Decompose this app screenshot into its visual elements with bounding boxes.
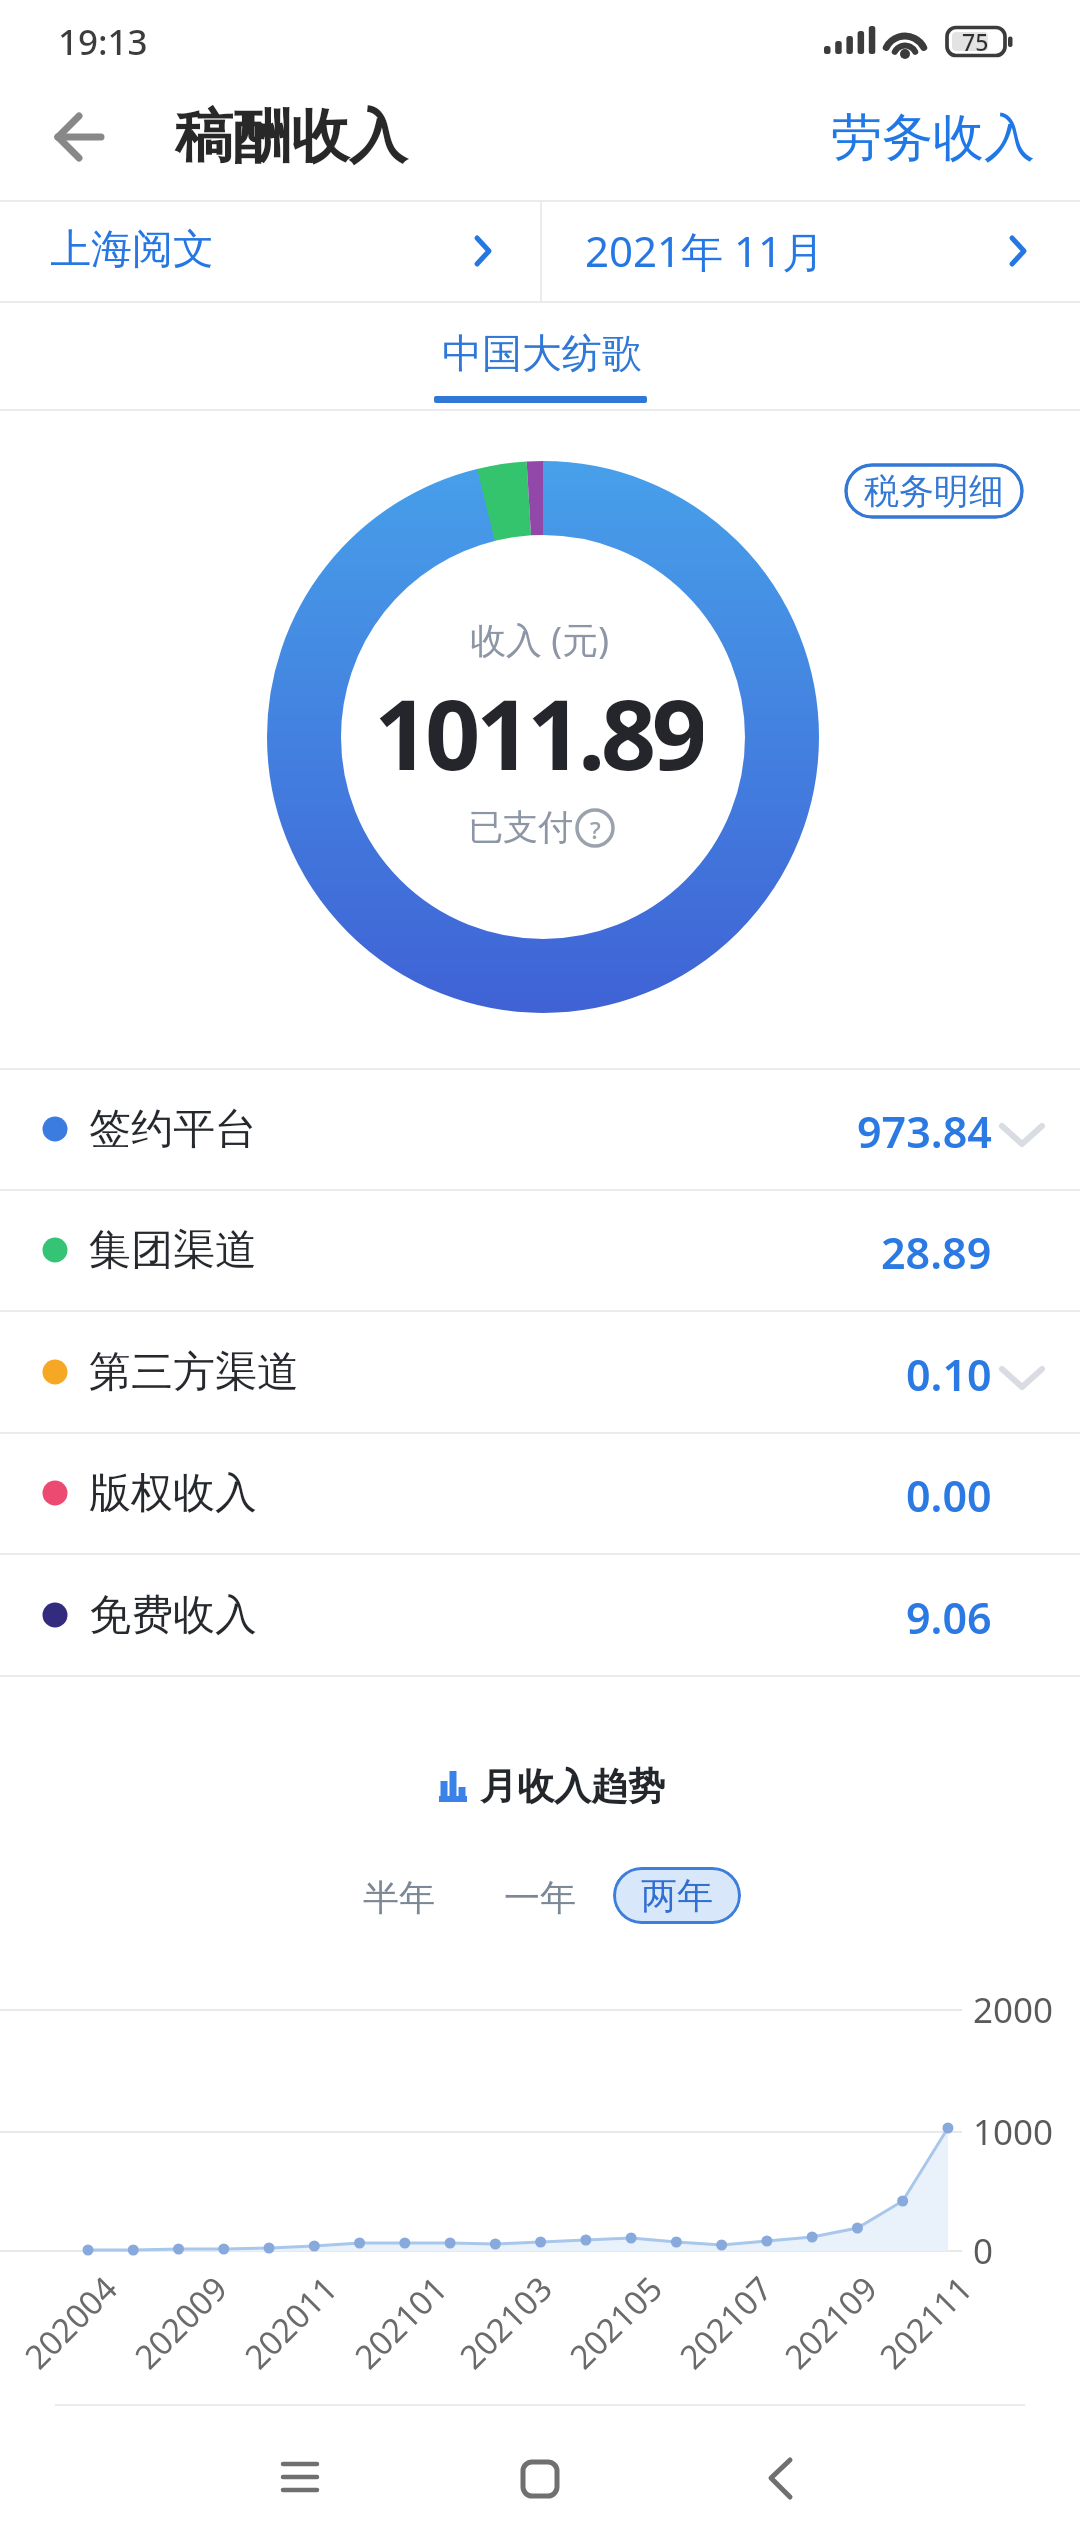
staticText: 收入 (元) (470, 615, 609, 664)
staticText: 中国大纺歌 (442, 328, 642, 378)
staticText: 免费收入 (89, 1589, 257, 1642)
button[interactable] (751, 2443, 811, 2517)
button[interactable]: 半年 (349, 1866, 449, 1928)
staticText: 28.89 (881, 1223, 992, 1282)
staticText: 集团渠道 (89, 1224, 257, 1277)
staticText: 19:13 (58, 18, 148, 66)
button[interactable] (0, 1191, 1080, 1310)
button[interactable] (263, 2457, 337, 2511)
staticText: 0.00 (906, 1466, 992, 1525)
button[interactable] (540, 202, 1080, 301)
button[interactable] (0, 1434, 1080, 1553)
staticText: 第三方渠道 (89, 1346, 299, 1399)
staticText: 1011.89 (374, 666, 703, 786)
staticText: ? (590, 813, 601, 846)
button[interactable]: 税务明细 (844, 463, 1024, 519)
staticText: 稿酬收入 (175, 100, 407, 173)
button[interactable] (0, 1070, 1080, 1189)
staticText: 半年 (363, 1875, 435, 1920)
staticText: 两年 (641, 1873, 713, 1918)
staticText: 75 (962, 26, 989, 57)
staticText: 2021年 11月 (585, 222, 825, 279)
button[interactable] (0, 1556, 1080, 1675)
button[interactable] (0, 202, 540, 301)
staticText: 版权收入 (89, 1467, 257, 1520)
button[interactable] (0, 1313, 1080, 1432)
staticText: 一年 (504, 1875, 576, 1920)
staticText: 上海阅文 (50, 224, 214, 276)
button[interactable]: 一年 (490, 1866, 590, 1928)
staticText: 已支付 (468, 805, 573, 849)
staticText: 税务明细 (864, 469, 1004, 513)
button[interactable] (503, 2443, 577, 2517)
staticText: 9.06 (906, 1588, 992, 1647)
staticText: 973.84 (857, 1102, 992, 1161)
button[interactable] (40, 107, 116, 167)
button[interactable]: 两年 (613, 1867, 741, 1924)
staticText: 1000 (973, 2108, 1054, 2156)
staticText: 2000 (973, 1986, 1054, 2034)
staticText: 0.10 (906, 1345, 992, 1404)
staticText: 劳务收入 (831, 106, 1035, 170)
button[interactable]: 劳务收入 (820, 105, 1045, 170)
staticText: 签约平台 (89, 1103, 257, 1156)
button[interactable] (420, 303, 660, 409)
staticText: 月收入趋势 (480, 1763, 665, 1810)
staticText: 0 (973, 2227, 994, 2275)
